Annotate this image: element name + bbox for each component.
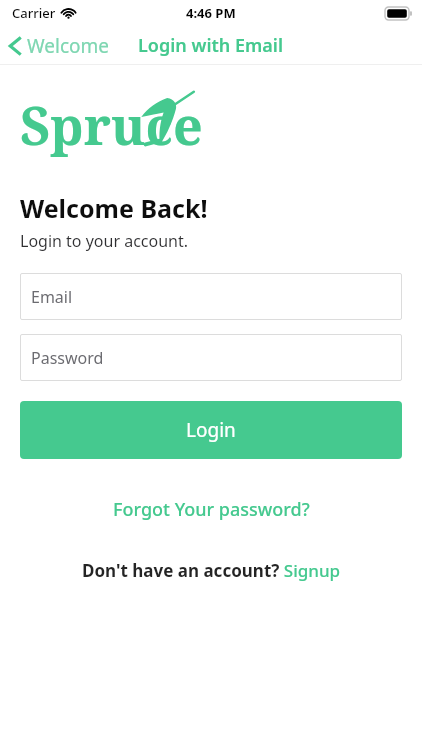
staticText: 4:46 PM bbox=[186, 4, 236, 22]
staticText: Welcome Back! bbox=[20, 191, 208, 225]
button[interactable]: Forgot Your password? bbox=[0, 491, 422, 527]
staticText: Login bbox=[186, 417, 236, 443]
button[interactable]: Password bbox=[20, 334, 402, 381]
staticText: Password bbox=[31, 347, 104, 369]
button[interactable]: Email bbox=[20, 273, 402, 320]
staticText: Don't have an account? Signup bbox=[82, 559, 341, 582]
button[interactable]: Login bbox=[20, 401, 402, 459]
staticText: Carrier bbox=[12, 4, 56, 22]
staticText: Login to your account. bbox=[20, 230, 189, 252]
staticText: Forgot Your password? bbox=[113, 497, 310, 522]
staticText: Email bbox=[31, 286, 73, 308]
staticText: Spruced bbox=[20, 89, 220, 167]
button[interactable]: Login with Email bbox=[138, 33, 284, 58]
button[interactable]: Welcome bbox=[0, 29, 120, 63]
button[interactable]: Don't have an account? Signup bbox=[0, 553, 422, 587]
staticText: Welcome bbox=[27, 33, 110, 59]
staticText: Login with Email bbox=[138, 33, 284, 58]
